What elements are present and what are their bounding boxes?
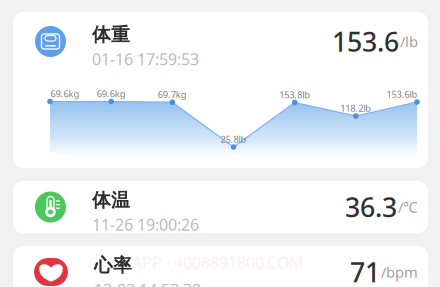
staticText: 心率 (94, 254, 132, 277)
staticText: 01-16 17:59:53 (92, 48, 199, 69)
staticText: 36.3 (345, 189, 397, 225)
staticText: 118.2lb (340, 102, 371, 114)
staticText: 69.6kg (50, 87, 79, 100)
staticText: 12-03 14:53:30 (94, 279, 201, 287)
staticText: /℃ (398, 197, 418, 217)
staticText: 71 (350, 254, 380, 287)
button[interactable]: 心率 (13, 246, 428, 287)
staticText: 11-26 19:00:26 (92, 214, 199, 235)
staticText: /lb (400, 32, 418, 51)
staticText: 153.8lb (279, 88, 310, 101)
staticText: 153.6 (332, 24, 399, 59)
staticText: APP · 4008891800.COM (132, 252, 304, 273)
staticText: 69.6kg (97, 87, 126, 100)
staticText: 25.8lb (220, 133, 246, 145)
staticText: 体重 (92, 23, 130, 46)
button[interactable]: 体温 (13, 181, 428, 233)
staticText: /bpm (381, 262, 418, 282)
staticText: 体温 (92, 189, 130, 212)
button[interactable]: 体重 (13, 12, 428, 168)
staticText: 153.6lb (386, 88, 417, 100)
staticText: 69.7kg (158, 88, 187, 101)
